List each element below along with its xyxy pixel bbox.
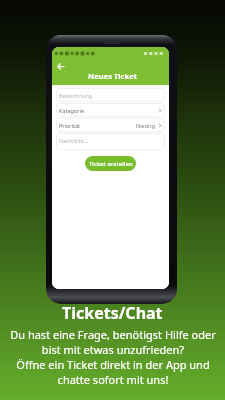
button[interactable]: Bezeichnung (56, 88, 165, 102)
button[interactable]: Nachricht... (56, 133, 165, 150)
staticText: Priorität (59, 122, 81, 129)
staticText: Nachricht... (59, 137, 89, 144)
staticText: Niedrig (136, 122, 156, 129)
button[interactable]: Priorität (56, 118, 165, 132)
staticText: Ticket erstellen (89, 160, 133, 168)
staticText: Du hast eine Frage, benötigst Hilfe oder… (10, 327, 216, 387)
button[interactable]: Back (53, 59, 67, 73)
staticText: Kategorie (59, 107, 85, 114)
button[interactable]: Kategorie (56, 103, 165, 117)
staticText: Bezeichnung (59, 92, 93, 99)
staticText: Tickets/Chat (62, 302, 163, 324)
staticText: Neues Ticket (88, 71, 138, 81)
button[interactable]: Ticket erstellen (85, 156, 136, 171)
